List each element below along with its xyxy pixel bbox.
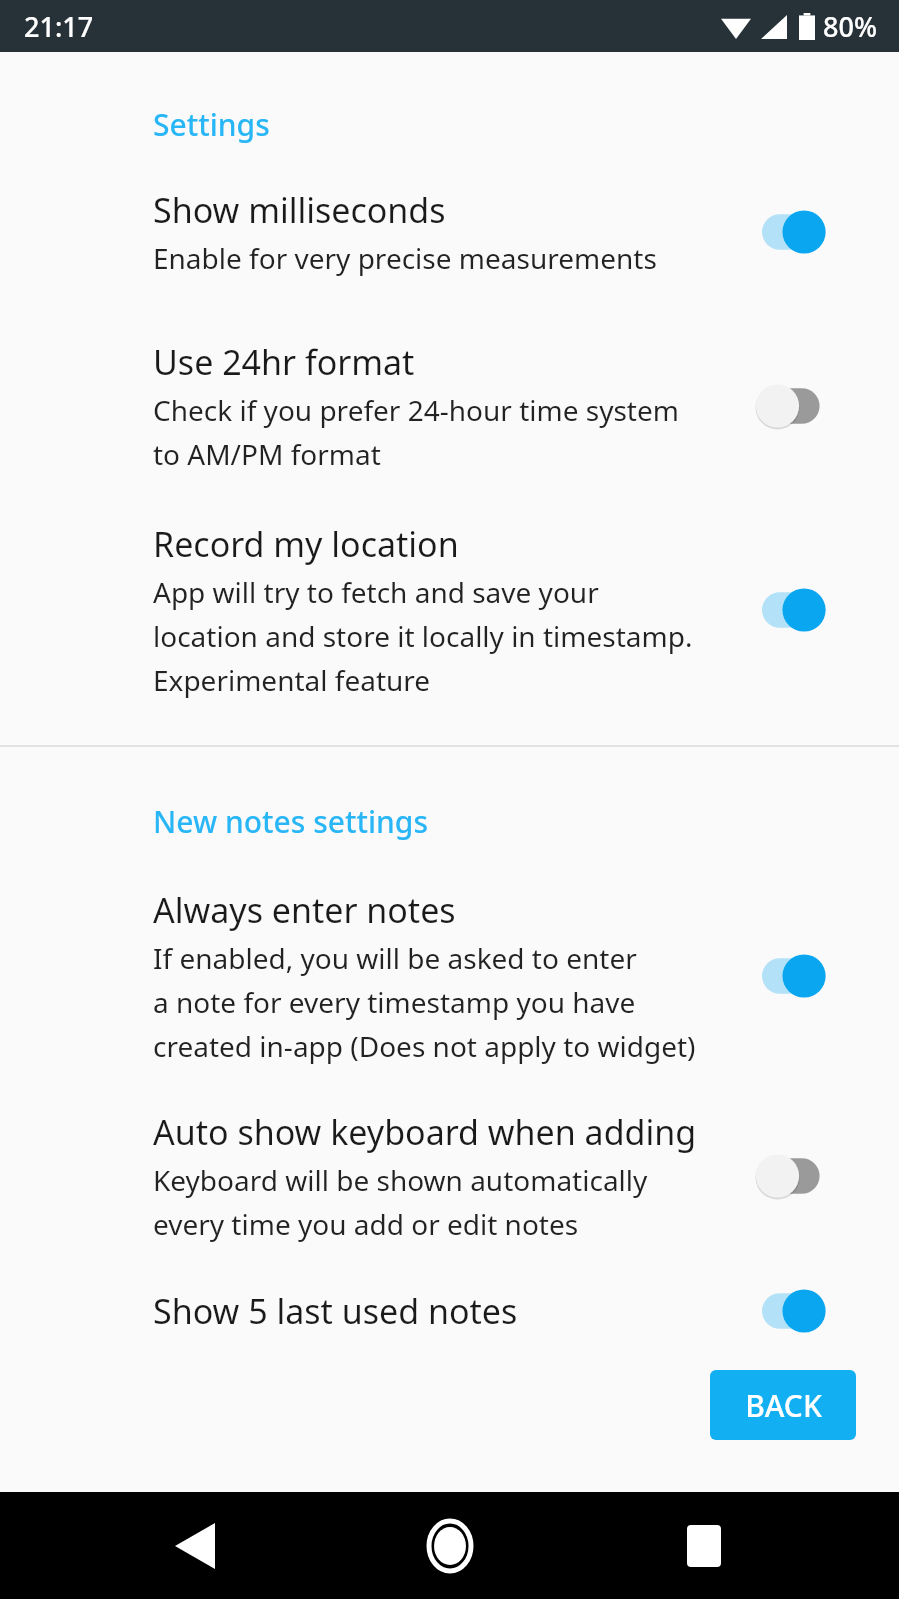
button[interactable]: On: [758, 1287, 838, 1335]
staticText: every time you add or edit notes: [153, 1205, 579, 1243]
staticText: 21:17: [24, 8, 94, 45]
button[interactable]: Back: [150, 1501, 240, 1591]
button[interactable]: Off: [758, 1152, 838, 1200]
button[interactable]: Home: [405, 1501, 495, 1591]
staticText: Keyboard will be shown automatically: [153, 1161, 648, 1199]
button[interactable]: On: [758, 208, 838, 256]
staticText: Auto show keyboard when adding a..: [153, 1109, 742, 1155]
button[interactable]: Off: [758, 382, 838, 430]
button[interactable]: Record my location: [0, 521, 899, 699]
staticText: created in-app (Does not apply to widget…: [153, 1027, 696, 1065]
staticText: Use 24hr format: [153, 339, 415, 385]
staticText: If enabled, you will be asked to enter: [153, 939, 637, 977]
button[interactable]: Always enter notes: [0, 887, 899, 1065]
staticText: Enable for very precise measurements: [153, 239, 657, 277]
staticText: location and store it locally in timesta…: [153, 617, 693, 655]
staticText: to AM/PM format: [153, 435, 381, 473]
staticText: Show 5 last used notes: [153, 1288, 518, 1334]
staticText: Experimental feature: [153, 661, 431, 699]
button[interactable]: Show milliseconds: [0, 187, 899, 277]
staticText: New notes settings: [153, 801, 429, 842]
staticText: BACK: [745, 1385, 822, 1426]
staticText: 80%: [823, 8, 877, 45]
button[interactable]: On: [758, 586, 838, 634]
button[interactable]: Auto show keyboard when adding a..: [0, 1109, 899, 1243]
staticText: Check if you prefer 24-hour time system: [153, 391, 679, 429]
button[interactable]: On: [758, 952, 838, 1000]
button[interactable]: Use 24hr format: [0, 339, 899, 473]
button[interactable]: Recent apps: [659, 1501, 749, 1591]
staticText: App will try to fetch and save your: [153, 573, 599, 611]
staticText: Settings: [153, 104, 270, 145]
staticText: Always enter notes: [153, 887, 456, 933]
button[interactable]: BACK: [710, 1370, 856, 1440]
staticText: Record my location: [153, 521, 459, 567]
staticText: Show milliseconds: [153, 187, 446, 233]
staticText: a note for every timestamp you have: [153, 983, 636, 1021]
button[interactable]: Show 5 last used notes: [0, 1287, 899, 1335]
